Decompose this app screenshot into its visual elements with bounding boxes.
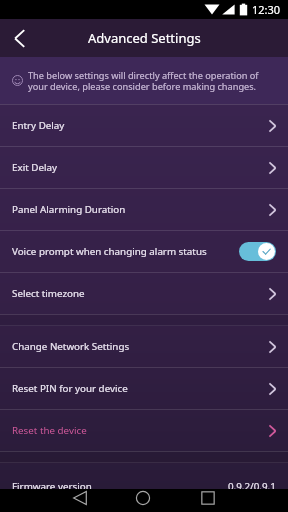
button[interactable]: Panel Alarming Duration (0, 189, 288, 230)
button[interactable]: Recents (194, 486, 222, 509)
staticText: The below settings will directly affect … (28, 69, 268, 93)
staticText: Change Network Settings (12, 340, 269, 353)
staticText: 0.9.2/0.9.1 (228, 480, 276, 489)
button[interactable]: Back (66, 486, 94, 509)
button[interactable]: Reset PIN for your device (0, 368, 288, 409)
button[interactable]: Voice prompt when changing alarm status (0, 231, 288, 272)
button[interactable]: Change Network Settings (0, 326, 288, 367)
button[interactable]: Home (129, 486, 157, 509)
staticText: Exit Delay (12, 161, 269, 174)
button[interactable]: Back (0, 19, 39, 57)
staticText: 12:30 (252, 2, 281, 17)
staticText: Select timezone (12, 287, 269, 300)
staticText: Entry Delay (12, 119, 269, 132)
button[interactable]: Exit Delay (0, 147, 288, 188)
button[interactable]: Reset the device (0, 410, 288, 451)
button[interactable]: Entry Delay (0, 105, 288, 146)
staticText: Advanced Settings (88, 29, 201, 47)
staticText: Reset PIN for your device (12, 382, 269, 395)
button[interactable]: Firmware version (0, 463, 288, 489)
button[interactable]: Select timezone (0, 273, 288, 314)
staticText: Reset the device (12, 424, 269, 437)
staticText: Firmware version (12, 480, 228, 489)
staticText: Voice prompt when changing alarm status (12, 245, 239, 258)
staticText: Panel Alarming Duration (12, 203, 269, 216)
